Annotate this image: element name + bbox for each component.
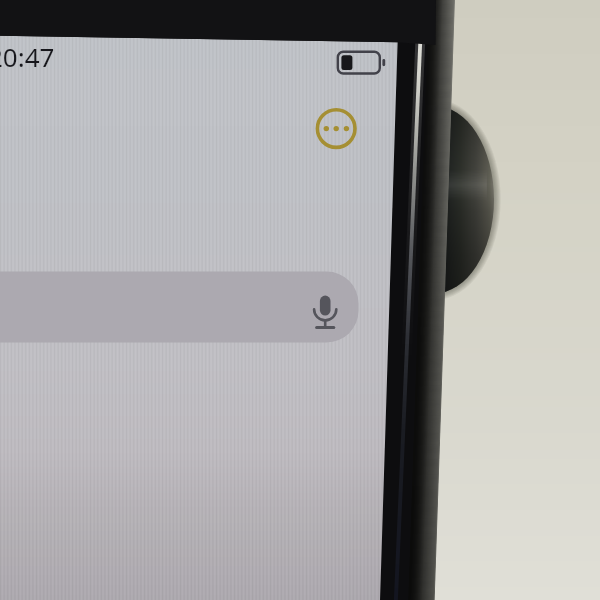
button[interactable]: More options	[314, 106, 359, 151]
button[interactable]: Search	[0, 271, 359, 342]
button[interactable]: Voice search	[303, 288, 348, 333]
staticText: 20:47	[0, 39, 55, 74]
